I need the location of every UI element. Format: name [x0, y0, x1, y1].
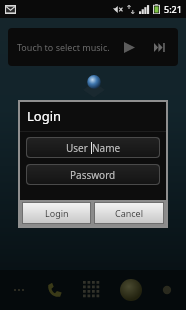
staticText: User — [66, 141, 91, 155]
staticText: Login — [27, 107, 62, 125]
button[interactable]: Password — [27, 165, 159, 184]
staticText: My Link — [79, 98, 108, 109]
staticText: Cancel — [115, 207, 144, 219]
button[interactable]: Camera — [154, 277, 180, 303]
staticText: Password — [70, 168, 116, 182]
button[interactable]: Touch to select music. — [8, 28, 178, 66]
staticText: Name — [92, 141, 121, 155]
button[interactable]: Apps — [76, 274, 108, 306]
button[interactable]: My Link — [81, 72, 107, 98]
button[interactable]: Play — [118, 36, 140, 58]
button[interactable]: Next track — [148, 36, 170, 58]
button[interactable]: Home pages — [6, 278, 34, 302]
staticText: Login — [45, 207, 69, 219]
staticText: Touch to select music. — [17, 41, 110, 53]
button[interactable]: Login — [23, 203, 90, 223]
button[interactable]: Cancel — [95, 203, 163, 223]
button[interactable]: User — [27, 138, 159, 157]
button[interactable]: Browser — [115, 274, 147, 306]
staticText: 5:21 — [164, 3, 182, 15]
button[interactable]: Phone — [40, 275, 70, 305]
